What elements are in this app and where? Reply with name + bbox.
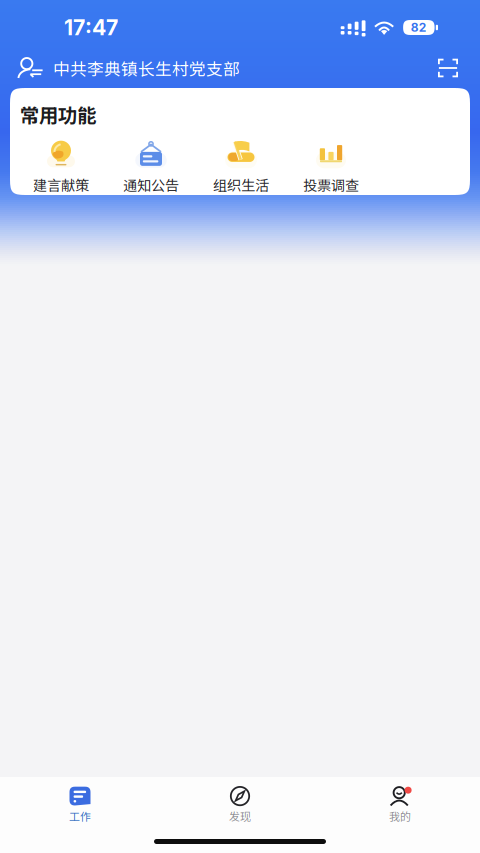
staticText: 组织生活	[213, 174, 269, 195]
button[interactable]: 通知公告	[106, 139, 196, 193]
staticText: 17:47	[64, 15, 118, 40]
staticText: 工作	[69, 808, 91, 824]
button[interactable]: 投票调查	[286, 139, 376, 193]
staticText: 常用功能	[20, 100, 96, 128]
staticText: 82	[411, 20, 427, 35]
button[interactable]: 我的	[320, 783, 480, 827]
button[interactable]: 发现	[160, 783, 320, 827]
staticText: 通知公告	[123, 174, 179, 195]
staticText: 发现	[229, 808, 251, 824]
button[interactable]: 中共李典镇长生村党支部	[0, 48, 250, 88]
button[interactable]: 组织生活	[196, 139, 286, 193]
button[interactable]: 工作	[0, 783, 160, 827]
staticText: 建言献策	[33, 174, 89, 195]
button[interactable]: 扫一扫	[426, 48, 470, 88]
button[interactable]: 建言献策	[16, 139, 106, 193]
staticText: 我的	[389, 808, 411, 824]
staticText: 投票调查	[303, 174, 359, 195]
staticText: 中共李典镇长生村党支部	[53, 56, 240, 80]
